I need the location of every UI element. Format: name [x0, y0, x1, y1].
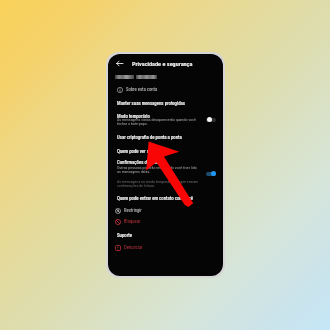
staticText: As mensagens no modo temporário sempre e…	[117, 179, 199, 188]
button[interactable]: Sobre esta conta	[117, 86, 158, 93]
staticText: As mensagens vistas desaparecerão quando…	[117, 117, 196, 126]
button[interactable]: Confirmações de leitura	[117, 160, 205, 166]
staticText: Quem pode entrar em contato com você	[117, 196, 193, 202]
staticText: Suporte	[117, 233, 133, 239]
button[interactable]: Voltar	[115, 59, 124, 68]
button[interactable]: Modo temporário	[117, 114, 202, 120]
button[interactable]: Bloquear	[115, 218, 141, 225]
button[interactable]: Restringir	[115, 207, 142, 214]
staticText: Bloquear	[124, 219, 141, 225]
button[interactable]: Usar criptografia de ponta a ponta	[117, 135, 182, 141]
staticText: Modo temporário	[117, 114, 150, 120]
button[interactable]: Desativado	[206, 117, 216, 122]
button[interactable]: Denunciar	[115, 244, 143, 251]
staticText: Usar criptografia de ponta a ponta	[117, 135, 182, 141]
staticText: Quem pode ver sua atividade	[117, 149, 173, 155]
staticText: Outras pessoas poderão ver quando você t…	[117, 165, 197, 174]
staticText: Privacidade e segurança	[132, 60, 193, 67]
button[interactable]: Ativado	[206, 171, 216, 176]
staticText: Manter suas mensagens protegidas	[117, 101, 185, 107]
staticText: Restringir	[124, 208, 142, 214]
staticText: Confirmações de leitura	[117, 160, 163, 166]
staticText: Sobre esta conta	[126, 87, 158, 93]
staticText: Denunciar	[124, 245, 143, 251]
button[interactable]: Quem pode ver sua atividade	[117, 149, 173, 155]
